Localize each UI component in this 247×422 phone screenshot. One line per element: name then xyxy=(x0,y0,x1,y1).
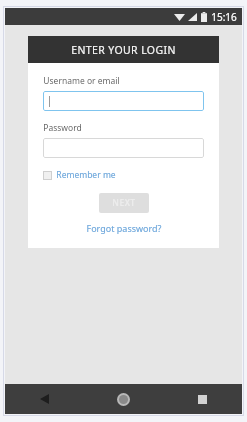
button[interactable]: Remember me xyxy=(43,168,116,182)
button[interactable]: Back xyxy=(5,384,84,414)
button[interactable] xyxy=(43,91,204,111)
staticText: 15:16 xyxy=(211,10,237,24)
button[interactable] xyxy=(43,138,204,158)
button[interactable]: NEXT xyxy=(99,193,149,213)
staticText: NEXT xyxy=(112,197,136,209)
staticText: Remember me xyxy=(56,169,116,181)
staticText: Forgot password? xyxy=(86,222,162,234)
button[interactable]: Recent apps xyxy=(163,384,242,414)
button[interactable]: Home xyxy=(84,384,163,414)
staticText: Password xyxy=(43,122,82,134)
staticText: Username or email xyxy=(43,75,120,87)
button[interactable]: Forgot password? xyxy=(82,220,166,236)
staticText: ENTER YOUR LOGIN xyxy=(71,43,176,57)
